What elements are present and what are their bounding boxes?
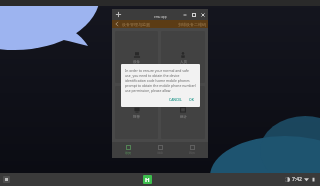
staticText: 设备管理与监测 [122,22,150,27]
button[interactable]: 首页 [112,142,144,158]
button[interactable]: Close [200,12,206,18]
staticText: CANCEL [169,97,182,102]
button[interactable]: Minimize [182,12,188,18]
button[interactable]: 统计 [161,86,205,139]
button[interactable]: Move window [115,11,122,18]
button[interactable]: 设备 [115,31,158,83]
staticText: 首页 [125,151,131,155]
staticText: 报警 [133,115,140,119]
staticText: H [145,176,150,184]
button[interactable]: Back [114,21,120,27]
button[interactable]: 人员 [161,31,205,83]
staticText: OK [189,97,194,102]
staticText: 统计 [180,115,187,119]
button[interactable]: 报警 [115,86,158,139]
staticText: In order to ensure your normal and safe … [125,68,196,93]
button[interactable]: Maximize [191,12,197,18]
staticText: 我的 [189,151,195,155]
staticText: 7:42 [292,176,302,183]
staticText: emu app [154,15,167,19]
staticText: 消息 [157,151,163,155]
staticText: 设备 [133,60,140,64]
button[interactable]: 我的 [176,142,208,158]
button[interactable]: OK [187,96,196,103]
button[interactable]: Apps menu [3,176,10,183]
staticText: 人员 [180,60,187,64]
button[interactable]: CANCEL [167,96,184,103]
button[interactable]: 消息 [144,142,176,158]
button[interactable]: Network [304,177,309,182]
button[interactable]: Battery [311,177,316,182]
button[interactable]: Brightness [285,177,290,182]
button[interactable]: App [143,175,152,184]
staticText: 扫描设备二维码 [178,22,206,27]
